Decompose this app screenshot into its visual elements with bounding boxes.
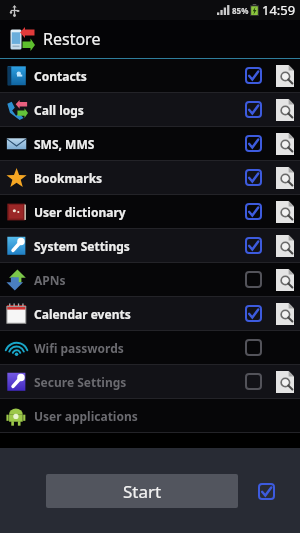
staticText: Contacts bbox=[34, 68, 236, 84]
button[interactable]: SMS, MMS checkbox bbox=[236, 127, 270, 160]
staticText: System Settings bbox=[34, 238, 236, 254]
staticText: Secure Settings bbox=[34, 374, 236, 390]
staticText: Calendar events bbox=[34, 306, 236, 322]
button[interactable]: Details for System Settings bbox=[270, 229, 300, 262]
button[interactable]: Start bbox=[46, 474, 238, 508]
staticText: User dictionary bbox=[34, 204, 236, 220]
button[interactable]: User dictionary checkbox bbox=[236, 195, 270, 228]
button[interactable]: User dictionary bbox=[0, 195, 300, 228]
staticText: SMS, MMS bbox=[34, 136, 236, 152]
button[interactable]: Secure Settings bbox=[0, 365, 300, 398]
staticText: APNs bbox=[34, 272, 236, 288]
staticText: Start bbox=[123, 480, 162, 503]
button[interactable]: Details for APNs bbox=[270, 263, 300, 296]
button[interactable]: System Settings checkbox bbox=[236, 229, 270, 262]
staticText: 85% bbox=[232, 5, 249, 16]
staticText: 14:59 bbox=[262, 1, 296, 19]
button[interactable]: Details for Secure Settings bbox=[270, 365, 300, 398]
button[interactable]: SMS, MMS bbox=[0, 127, 300, 160]
button[interactable]: Wifi passwords checkbox bbox=[236, 331, 270, 364]
button[interactable]: Bookmarks bbox=[0, 161, 300, 194]
button[interactable]: Details for Bookmarks bbox=[270, 161, 300, 194]
button[interactable]: Wifi passwords bbox=[0, 331, 300, 364]
button[interactable]: Select all bbox=[238, 471, 294, 511]
staticText: Call logs bbox=[34, 102, 236, 118]
button[interactable]: Details for Contacts bbox=[270, 59, 300, 92]
button[interactable]: Contacts checkbox bbox=[236, 59, 270, 92]
button[interactable]: Bookmarks checkbox bbox=[236, 161, 270, 194]
button[interactable]: System Settings bbox=[0, 229, 300, 262]
staticText: Bookmarks bbox=[34, 170, 236, 186]
button[interactable]: Details for Calendar events bbox=[270, 297, 300, 330]
staticText: User applications bbox=[34, 408, 236, 424]
staticText: Restore bbox=[43, 28, 101, 50]
button[interactable]: Contacts bbox=[0, 59, 300, 92]
staticText: Wifi passwords bbox=[34, 340, 236, 356]
button[interactable]: Details for Call logs bbox=[270, 93, 300, 126]
button[interactable]: Details for SMS, MMS bbox=[270, 127, 300, 160]
button[interactable]: APNs bbox=[0, 263, 300, 296]
button[interactable]: APNs checkbox bbox=[236, 263, 270, 296]
button[interactable]: Calendar events bbox=[0, 297, 300, 330]
button[interactable]: User applications bbox=[0, 399, 300, 432]
button[interactable]: Call logs bbox=[0, 93, 300, 126]
button[interactable]: Call logs checkbox bbox=[236, 93, 270, 126]
button[interactable]: Restore bbox=[0, 20, 300, 58]
button[interactable]: Calendar events checkbox bbox=[236, 297, 270, 330]
button[interactable]: Details for User dictionary bbox=[270, 195, 300, 228]
button[interactable]: Secure Settings checkbox bbox=[236, 365, 270, 398]
